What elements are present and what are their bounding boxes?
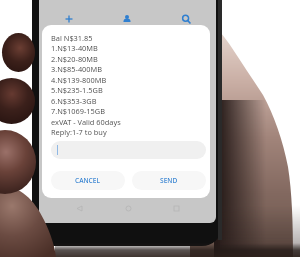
button[interactable]: SEND (132, 171, 206, 190)
staticText: exVAT - Valid 60days (51, 117, 121, 127)
staticText: 7.N$1069-15GB (51, 106, 105, 116)
staticText: 1.N$13-40MB (51, 43, 98, 53)
button[interactable]: Search (156, 10, 216, 28)
button[interactable]: Contacts (98, 10, 156, 28)
button[interactable] (51, 141, 206, 159)
staticText: 2.N$20-80MB (51, 54, 98, 64)
staticText: 3.N$85-400MB (51, 64, 103, 74)
button[interactable]: Add (39, 10, 98, 28)
staticText: Bal N$31.85 (51, 33, 93, 43)
staticText: Reply:1-7 to buy (51, 127, 107, 137)
button[interactable]: CANCEL (51, 171, 125, 190)
staticText: CANCEL (75, 176, 101, 185)
staticText: 6.N$353-3GB (51, 96, 97, 106)
staticText: 4.N$139-800MB (51, 75, 107, 85)
staticText: 5.N$235-1.5GB (51, 85, 103, 95)
staticText: SEND (160, 176, 178, 185)
